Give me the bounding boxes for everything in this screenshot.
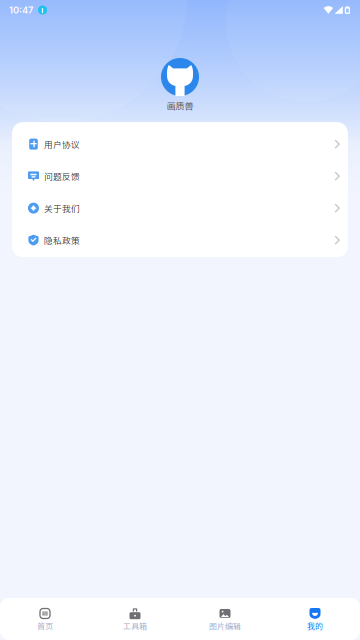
button[interactable]: 首页 — [0, 598, 90, 640]
button[interactable]: 关于我们 — [12, 192, 348, 224]
staticText: 图片编辑 — [209, 620, 241, 632]
staticText: 用户协议 — [44, 138, 80, 150]
button[interactable]: 工具箱 — [90, 598, 180, 640]
staticText: 画质兽 — [166, 99, 193, 112]
staticText: 工具箱 — [123, 620, 147, 632]
button[interactable]: 问题反馈 — [12, 160, 348, 192]
staticText: 问题反馈 — [44, 170, 80, 182]
button[interactable]: 隐私政策 — [12, 224, 348, 256]
button[interactable]: 图片编辑 — [180, 598, 270, 640]
button[interactable]: 用户协议 — [12, 128, 348, 160]
staticText: 我的 — [307, 620, 323, 632]
staticText: 10:47 — [9, 4, 33, 16]
staticText: 关于我们 — [44, 202, 80, 214]
staticText: 首页 — [37, 620, 53, 632]
staticText: 隐私政策 — [44, 234, 80, 246]
button[interactable]: 我的 — [270, 598, 360, 640]
